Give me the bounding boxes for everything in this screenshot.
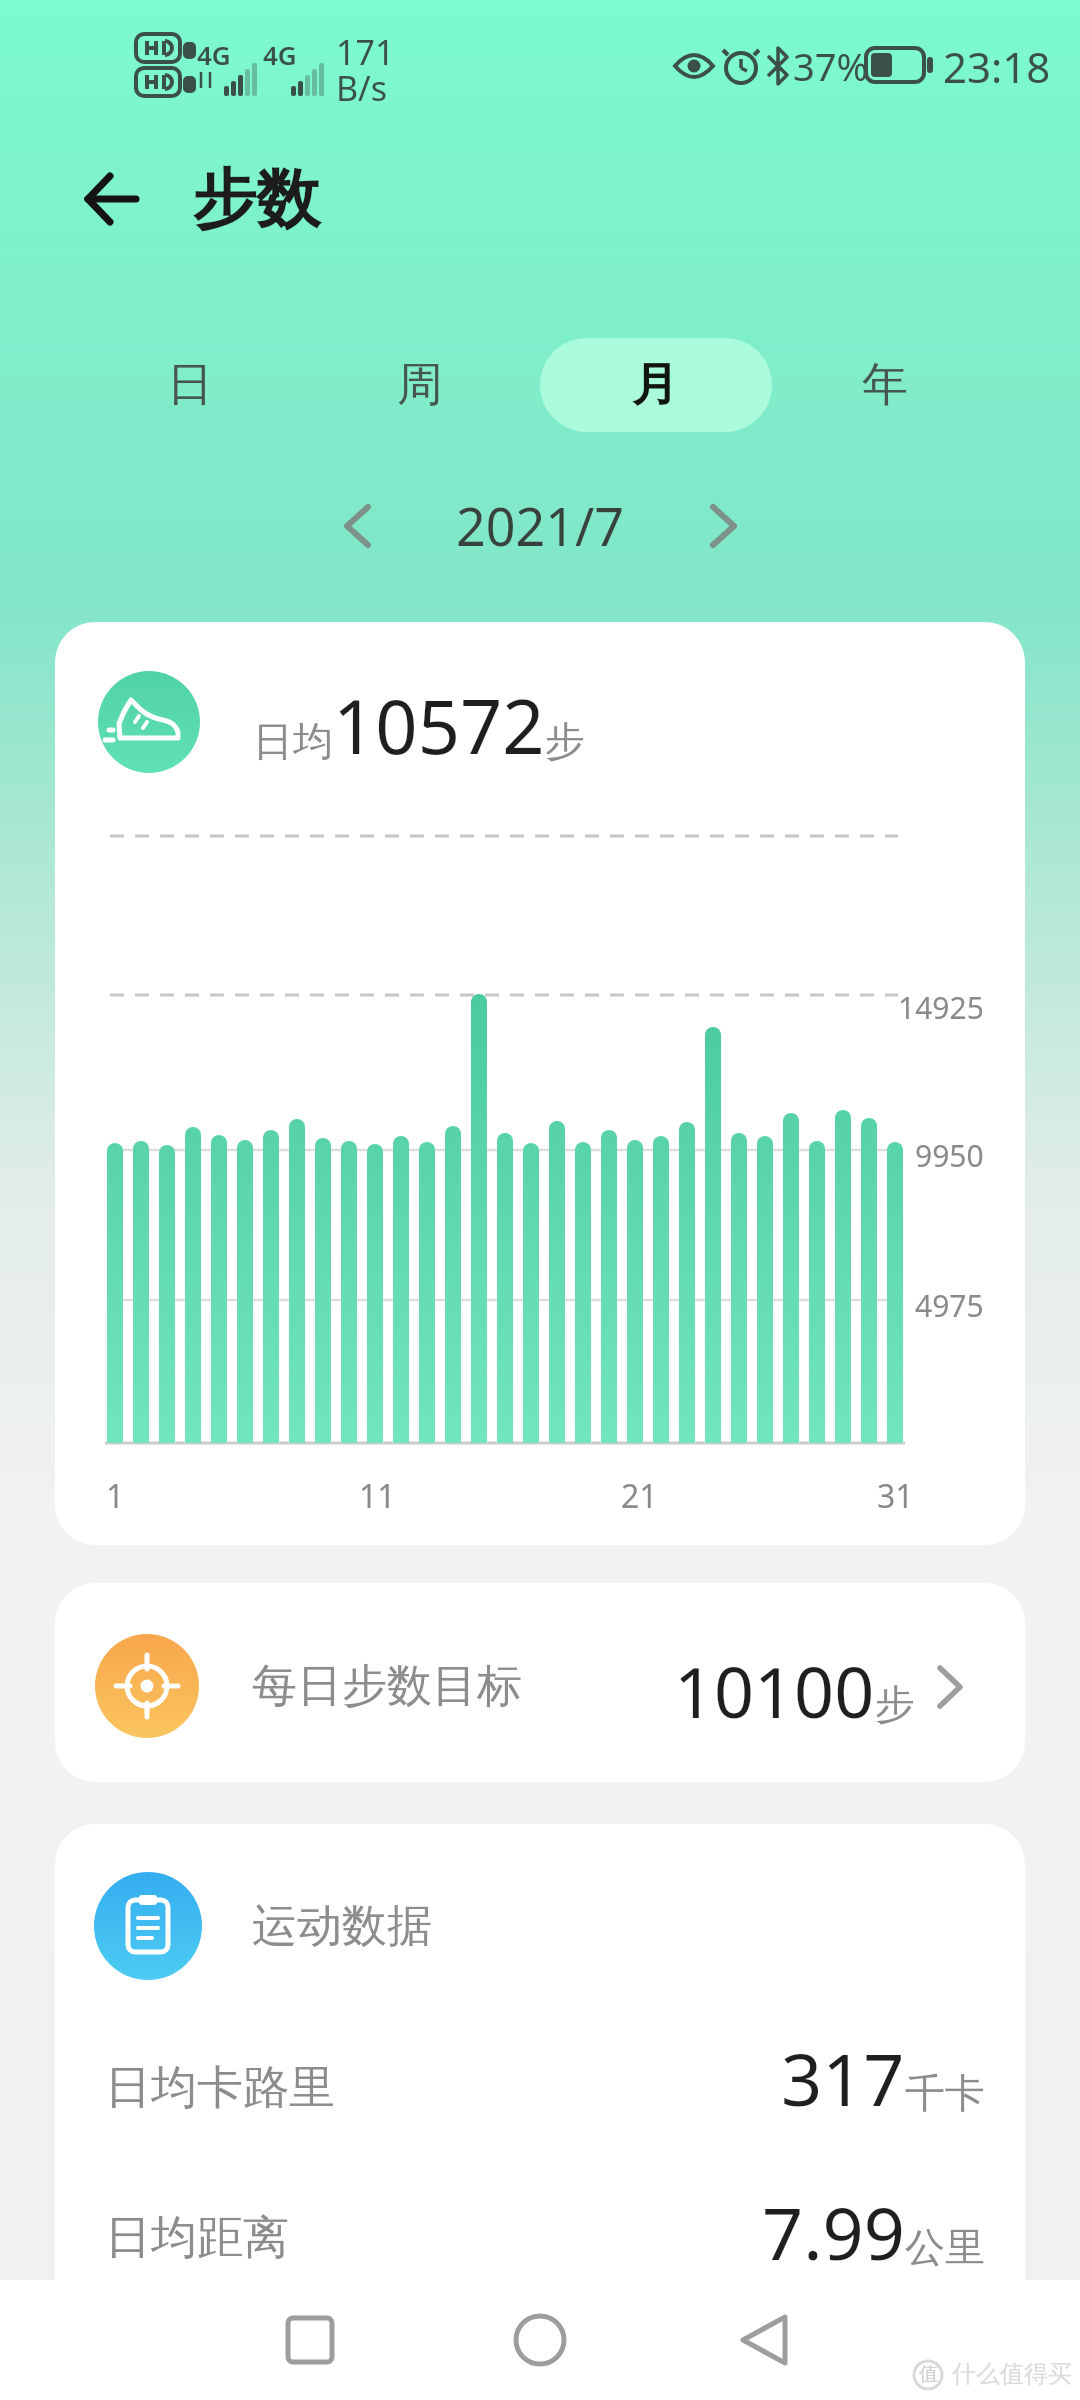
staticText: 千卡 (905, 2068, 985, 2118)
button[interactable] (65, 157, 155, 247)
staticText: 21 (621, 1474, 658, 1518)
staticText: 运动数据 (252, 1898, 432, 1955)
staticText: 日 (167, 356, 213, 414)
button[interactable] (685, 485, 765, 565)
staticText: 日均距离 (105, 2209, 289, 2267)
button[interactable] (805, 330, 965, 440)
button[interactable] (485, 2285, 595, 2395)
staticText: 公里 (905, 2222, 985, 2272)
button[interactable] (340, 330, 500, 440)
staticText: 日均 (253, 716, 333, 766)
staticText: 23:18 (943, 38, 1051, 95)
staticText: 4975 (915, 1285, 984, 1326)
staticText: 步数 (192, 159, 320, 240)
staticText: 周 (397, 356, 443, 414)
staticText: 7.99 (762, 2183, 905, 2281)
button[interactable] (540, 338, 772, 432)
staticText: 步 (875, 1679, 915, 1729)
staticText: 10100 (674, 1643, 875, 1738)
button[interactable] (315, 485, 395, 565)
staticText: 1 (106, 1474, 125, 1518)
staticText: 什么值得买 (952, 2359, 1072, 2389)
staticText: 2021/7 (456, 490, 625, 561)
button[interactable] (55, 1583, 1025, 1782)
staticText: 11 (359, 1474, 396, 1518)
staticText: 每日步数目标 (252, 1658, 522, 1715)
staticText: 月 (632, 356, 678, 414)
staticText: 171 (336, 29, 395, 75)
staticText: 37% (793, 40, 869, 92)
staticText: 9950 (915, 1135, 984, 1176)
staticText: 4G (197, 37, 231, 72)
staticText: 31 (877, 1474, 914, 1518)
button[interactable] (710, 2285, 820, 2395)
button[interactable] (255, 2285, 365, 2395)
staticText: B/s (336, 65, 388, 111)
button[interactable] (110, 330, 270, 440)
staticText: 日均卡路里 (105, 2059, 335, 2117)
staticText: 值 (919, 2362, 938, 2386)
staticText: 4G (263, 37, 297, 72)
staticText: 步 (545, 716, 585, 766)
staticText: 年 (862, 356, 908, 414)
staticText: 317 (781, 2029, 905, 2127)
staticText: 14925 (898, 987, 984, 1028)
staticText: 10572 (333, 675, 545, 776)
